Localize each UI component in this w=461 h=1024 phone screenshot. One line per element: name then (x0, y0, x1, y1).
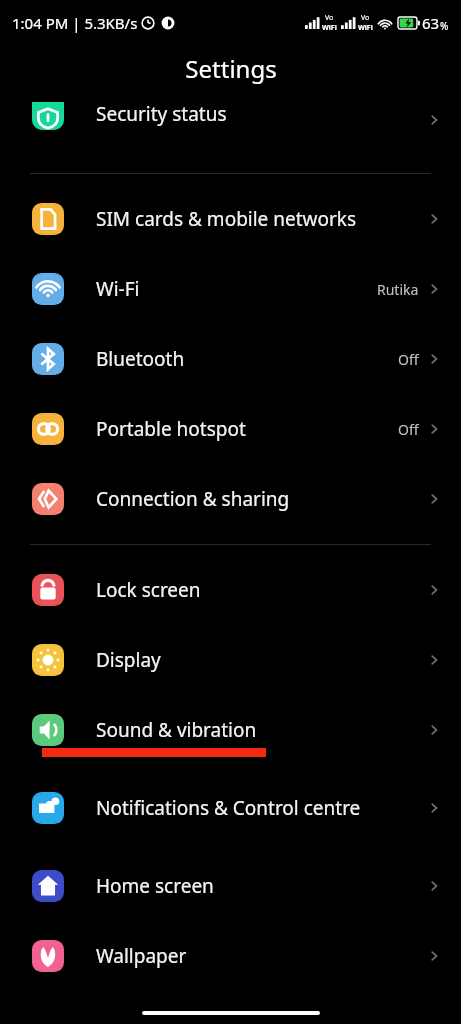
staticText: Display (96, 647, 425, 673)
staticText: Home screen (96, 873, 425, 899)
staticText: WiFi (322, 23, 337, 33)
staticText: 1:04 PM | 5.3KB/s (12, 13, 138, 33)
button[interactable]: Display (0, 625, 461, 695)
button[interactable]: SIM cards & mobile networks (0, 184, 461, 254)
button[interactable]: Wallpaper (0, 921, 461, 991)
staticText: Settings (185, 52, 277, 85)
button[interactable]: Portable hotspot (0, 394, 461, 464)
button[interactable]: Sound & vibration (0, 695, 461, 765)
staticText: Portable hotspot (96, 416, 398, 442)
staticText: Off (398, 420, 419, 439)
staticText: Notifications & Control centre (96, 795, 425, 821)
staticText: Rutika (377, 280, 419, 299)
staticText: Wallpaper (96, 943, 425, 969)
staticText: Off (398, 350, 419, 369)
staticText: Wi-Fi (96, 276, 377, 302)
staticText: Vo (325, 13, 334, 23)
staticText: Security status (96, 101, 425, 127)
button[interactable]: Wi-Fi (0, 254, 461, 324)
staticText: % (440, 19, 449, 33)
staticText: Bluetooth (96, 346, 398, 372)
staticText: Connection & sharing (96, 486, 425, 512)
button[interactable]: Security status (0, 90, 461, 138)
staticText: Sound & vibration (96, 717, 425, 743)
button[interactable]: Connection & sharing (0, 464, 461, 534)
staticText: SIM cards & mobile networks (96, 206, 425, 232)
staticText: WiFi (358, 23, 373, 33)
button[interactable]: Notifications & Control centre (0, 765, 461, 851)
staticText: 63 (422, 13, 440, 33)
button[interactable]: Bluetooth (0, 324, 461, 394)
button[interactable]: Home screen (0, 851, 461, 921)
staticText: Lock screen (96, 577, 425, 603)
button[interactable]: Lock screen (0, 555, 461, 625)
staticText: Vo (361, 13, 370, 23)
